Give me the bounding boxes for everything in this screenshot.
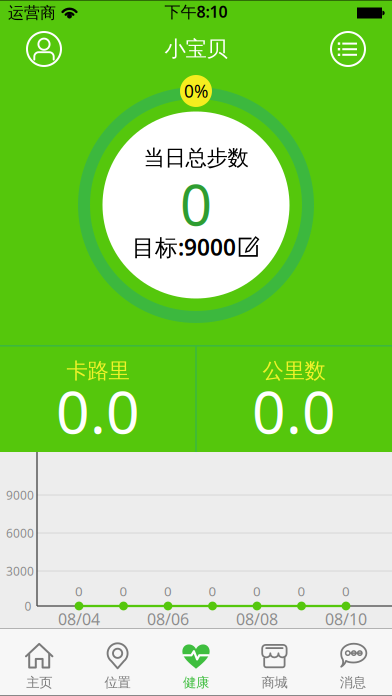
staticText: 0 [208,582,216,600]
staticText: 0 [180,167,212,241]
staticText: 目标:9000 [132,232,236,262]
staticText: 0 [119,582,127,600]
button[interactable]: 菜单 [330,21,392,77]
staticText: 08/04 [58,608,100,630]
staticText: 0 [297,582,305,600]
staticText: 位置 [105,674,131,691]
staticText: 9000 [6,487,34,503]
staticText: 6000 [6,525,34,541]
button[interactable]: 目标:9000 [132,232,260,262]
staticText: 0 [164,582,172,600]
staticText: 消息 [340,674,366,691]
button[interactable]: 商城 [235,628,314,696]
staticText: 当日总步数 [143,145,248,171]
staticText: 0.0 [56,372,140,450]
staticText: 下午8:10 [164,1,227,22]
staticText: 0 [253,582,261,600]
button[interactable]: 主页 [0,628,78,696]
staticText: 08/06 [147,608,189,630]
button[interactable]: 健康 [157,628,235,696]
staticText: 3000 [6,563,34,579]
staticText: 卡路里 [66,358,129,384]
staticText: 0% [184,79,208,102]
staticText: 08/08 [236,608,278,630]
staticText: 商城 [261,674,287,691]
staticText: 小宝贝 [164,36,227,62]
button[interactable]: 位置 [78,628,157,696]
button[interactable]: 消息 [314,628,392,696]
staticText: 0.0 [252,372,336,450]
staticText: 0 [75,582,83,600]
staticText: 公里数 [262,358,325,384]
staticText: 0 [342,582,350,600]
staticText: 运营商 [8,3,56,23]
staticText: 0 [24,598,31,614]
staticText: 健康 [183,674,209,691]
staticText: 08/10 [325,608,367,630]
staticText: 主页 [26,674,52,691]
button[interactable]: 个人资料 [0,21,62,77]
